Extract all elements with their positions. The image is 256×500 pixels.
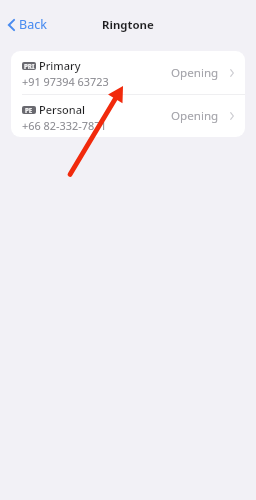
staticText: Personal [39,102,85,117]
staticText: PRI [24,62,35,70]
staticText: Back [19,16,47,33]
button[interactable]: PRI [11,51,245,94]
staticText: +66 82-332-7871 [22,118,107,133]
staticText: +91 97394 63723 [22,74,109,89]
button[interactable]: PE [11,95,245,137]
button[interactable]: Back [5,13,50,36]
staticText: Opening [171,65,219,81]
staticText: Opening [171,108,219,124]
staticText: Ringtone [102,17,154,33]
staticText: PE [25,106,33,114]
staticText: Primary [39,58,81,73]
